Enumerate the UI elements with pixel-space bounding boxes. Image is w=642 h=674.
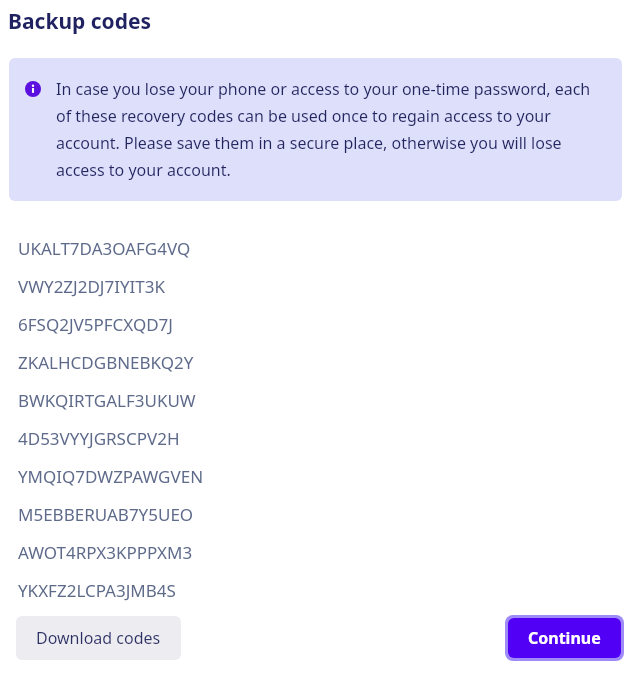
staticText: BWKQIRTGALF3UKUW: [18, 389, 196, 412]
button[interactable]: Continue: [505, 615, 624, 661]
staticText: ZKALHCDGBNEBKQ2Y: [18, 351, 194, 374]
staticText: AWOT4RPX3KPPPXM3: [18, 541, 193, 564]
staticText: UKALT7DA3OAFG4VQ: [18, 237, 191, 260]
staticText: Backup codes: [8, 7, 152, 36]
staticText: M5EBBERUAB7Y5UEO: [18, 503, 194, 526]
staticText: YKXFZ2LCPA3JMB4S: [18, 579, 176, 602]
staticText: 6FSQ2JV5PFCXQD7J: [18, 313, 173, 336]
staticText: 4D53VYYJGRSCPV2H: [18, 427, 180, 450]
staticText: In case you lose your phone or access to…: [56, 78, 606, 181]
staticText: YMQIQ7DWZPAWGVEN: [18, 465, 204, 488]
staticText: Download codes: [36, 627, 161, 649]
staticText: VWY2ZJ2DJ7IYIT3K: [18, 275, 166, 298]
button[interactable]: Download codes: [16, 616, 181, 660]
staticText: Continue: [528, 627, 601, 649]
other: Information: [25, 81, 41, 97]
